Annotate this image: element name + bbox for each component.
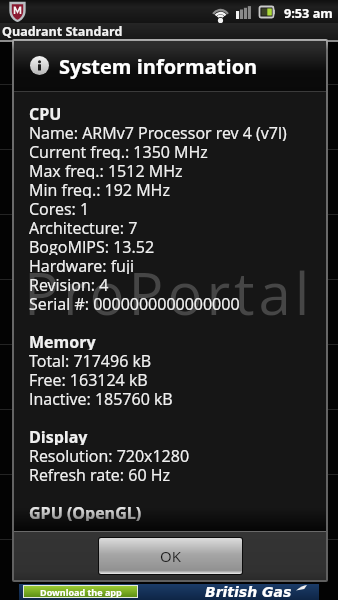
button[interactable]: OK xyxy=(99,538,242,574)
staticText: Resolution: 720x1280 xyxy=(29,445,190,464)
staticText: Display xyxy=(29,426,88,445)
staticText: System information xyxy=(59,53,258,80)
staticText: CPU xyxy=(29,103,62,122)
staticText: GPU (OpenGL) xyxy=(29,502,142,521)
staticText: 9:53 am xyxy=(284,4,333,21)
staticText: Name: ARMv7 Processor rev 4 (v7l) xyxy=(29,122,287,141)
staticText: Architecture: 7 xyxy=(29,217,138,236)
staticText: Hardware: fuji xyxy=(29,255,134,274)
staticText: Current freq.: 1350 MHz xyxy=(29,141,208,160)
button[interactable]: Download the app xyxy=(19,584,319,600)
staticText: Cores: 1 xyxy=(29,198,90,217)
staticText: British Gas xyxy=(205,584,292,600)
staticText: Total: 717496 kB xyxy=(29,350,152,369)
staticText: Memory xyxy=(29,331,96,350)
staticText: Max freq.: 1512 MHz xyxy=(29,160,183,179)
other: McAfee security xyxy=(8,1,27,22)
staticText: Min freq.: 192 MHz xyxy=(29,179,170,198)
staticText: ProPortal xyxy=(24,253,314,332)
staticText: OK xyxy=(160,546,181,566)
staticText: Revision: 4 xyxy=(29,274,109,293)
staticText: Serial #: 0000000000000000 xyxy=(29,293,240,312)
staticText: Free: 163124 kB xyxy=(29,369,148,388)
staticText: Quadrant Standard xyxy=(2,23,123,40)
staticText: Download the app xyxy=(40,586,122,597)
staticText: Refresh rate: 60 Hz xyxy=(29,464,170,483)
staticText: BogoMIPS: 13.52 xyxy=(29,236,155,255)
staticText: Inactive: 185760 kB xyxy=(29,388,173,407)
